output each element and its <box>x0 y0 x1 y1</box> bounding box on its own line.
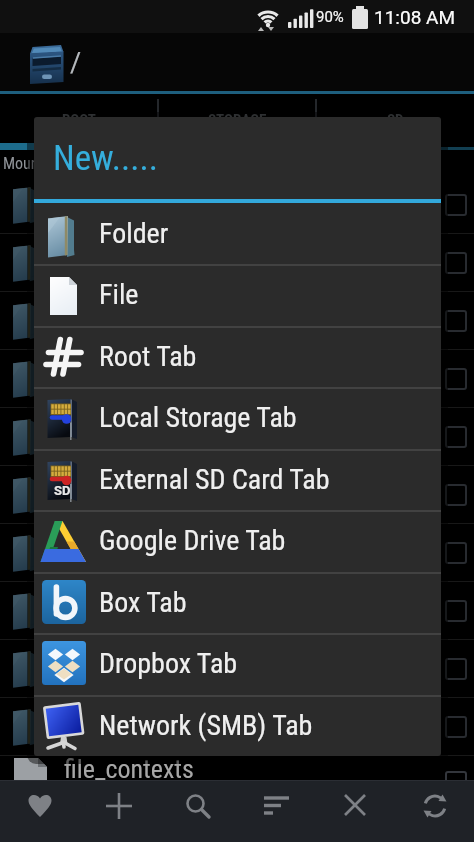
staticText: Mount R/W <box>3 154 74 173</box>
staticText: SD <box>387 111 404 129</box>
staticText: New..... <box>53 138 158 179</box>
staticText: Folder <box>99 217 169 250</box>
staticText: File <box>99 278 139 311</box>
staticText: 90% <box>316 8 344 26</box>
staticText: Network (SMB) Tab <box>99 709 313 742</box>
staticText: Dropbox Tab <box>99 647 238 680</box>
staticText: / <box>70 47 82 79</box>
staticText: External SD Card Tab <box>99 463 330 496</box>
button[interactable]: External SD Card Tab <box>34 449 441 510</box>
button[interactable] <box>395 780 474 832</box>
button[interactable]: SD <box>316 96 474 143</box>
button[interactable]: Google Drive Tab <box>34 510 441 571</box>
staticText: file_contexts <box>64 754 194 781</box>
button[interactable]: Dropbox Tab <box>34 633 441 694</box>
staticText: 11:08 AM <box>374 6 456 28</box>
staticText: ROOT <box>62 111 96 129</box>
button[interactable]: ROOT <box>0 96 158 143</box>
button[interactable]: Network (SMB) Tab <box>34 695 441 756</box>
button[interactable]: Box Tab <box>34 572 441 633</box>
button[interactable] <box>0 780 79 832</box>
staticText: Root Tab <box>99 340 197 373</box>
button[interactable]: Root Tab <box>34 326 441 387</box>
staticText: STORAGE <box>208 111 267 129</box>
staticText: Box Tab <box>99 586 187 619</box>
button[interactable]: Local Storage Tab <box>34 387 441 448</box>
staticText: Local Storage Tab <box>99 401 297 434</box>
button[interactable]: Folder <box>34 203 441 264</box>
staticText: SD <box>54 483 71 498</box>
staticText: Google Drive Tab <box>99 524 286 557</box>
button[interactable]: STORAGE <box>158 96 316 143</box>
button[interactable] <box>79 780 158 832</box>
button[interactable]: File <box>34 264 441 325</box>
button[interactable] <box>316 780 395 832</box>
button[interactable] <box>158 780 237 832</box>
button[interactable] <box>237 780 316 832</box>
